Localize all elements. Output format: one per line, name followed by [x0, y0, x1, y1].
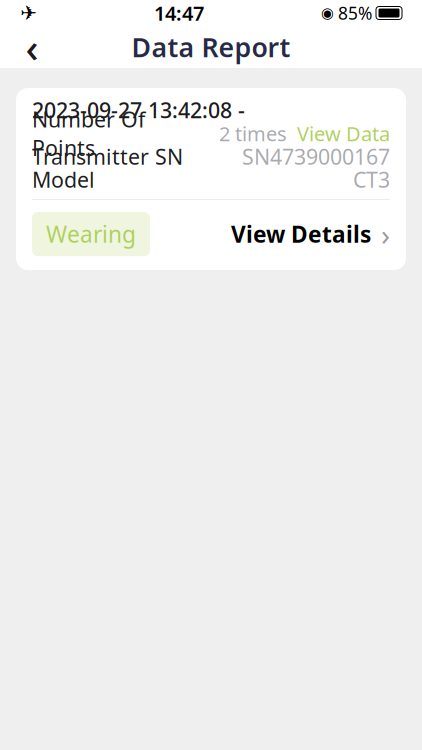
staticText: Data Report	[131, 29, 290, 65]
staticText: Model	[32, 165, 95, 194]
button[interactable]: Wearing	[32, 212, 150, 256]
staticText: ◉	[321, 5, 334, 21]
staticText: ✈	[20, 2, 37, 24]
staticText: View Data	[297, 120, 390, 147]
staticText: ›	[381, 215, 390, 254]
staticText: View Details	[231, 219, 371, 249]
staticText: 2023-09-27 13:42:08 -	[32, 96, 245, 124]
staticText: CT3	[353, 165, 390, 194]
staticText: Number Of Points	[32, 105, 145, 162]
staticText: 2 times	[219, 120, 287, 147]
staticText: ‹	[25, 20, 38, 73]
staticText: SN4739000167	[242, 142, 390, 171]
staticText: 14:47	[154, 0, 204, 26]
button[interactable]: View Data	[287, 120, 390, 147]
button[interactable]: View Details	[231, 215, 390, 254]
staticText: Wearing	[46, 219, 136, 249]
button[interactable]: Back	[10, 25, 54, 69]
staticText: 85%	[338, 1, 372, 24]
staticText: Transmitter SN	[32, 142, 183, 171]
